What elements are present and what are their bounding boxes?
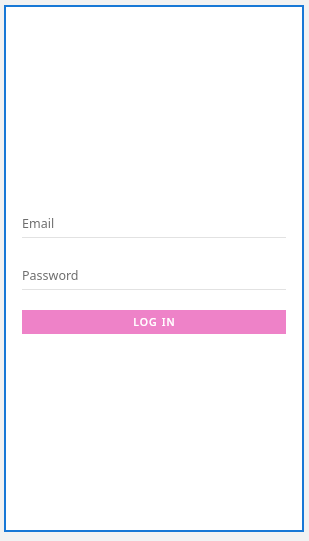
button[interactable]: Email <box>22 215 286 238</box>
button[interactable]: Password <box>22 267 286 290</box>
staticText: Email <box>22 215 55 232</box>
staticText: Password <box>22 267 79 284</box>
button[interactable]: LOG IN <box>22 310 286 334</box>
staticText: LOG IN <box>133 315 176 329</box>
